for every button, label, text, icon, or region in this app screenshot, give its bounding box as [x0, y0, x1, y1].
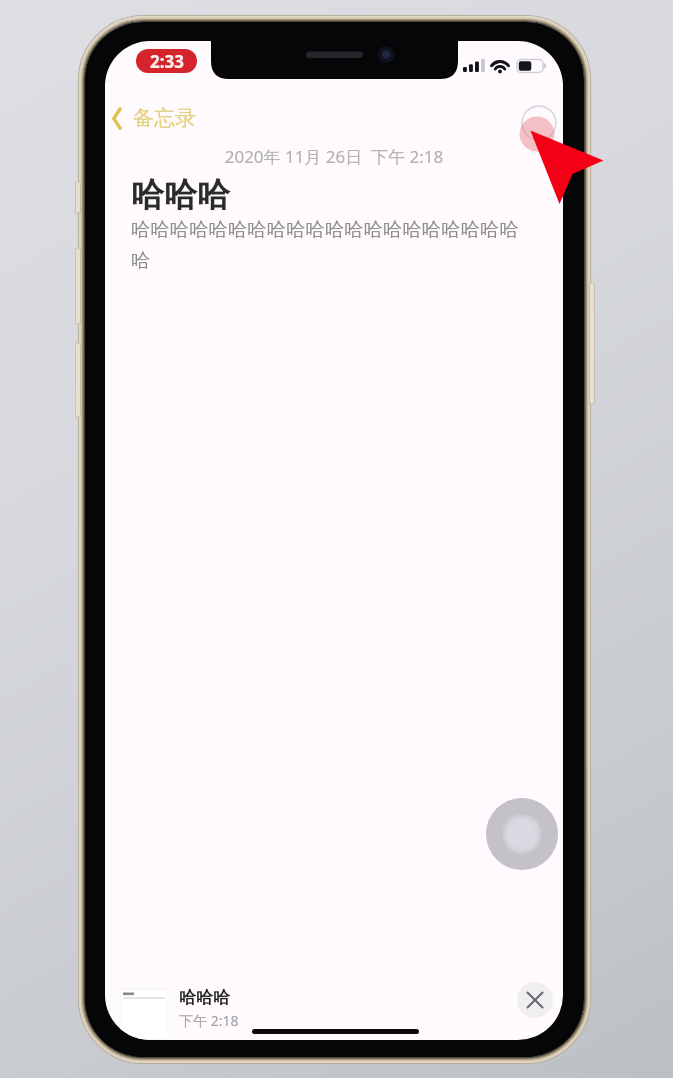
staticText: 下午 2:18 — [179, 1011, 239, 1030]
staticText: 哈哈哈哈哈哈哈哈哈哈哈哈哈哈哈哈哈哈哈哈哈 — [131, 217, 525, 273]
staticText: 哈哈哈 — [179, 987, 230, 1008]
button[interactable]: 备忘录 — [108, 101, 204, 135]
staticText: 2:33 — [150, 50, 184, 73]
staticText: 哈哈哈 — [131, 174, 230, 216]
button[interactable]: Recording — [136, 49, 197, 73]
button[interactable]: More — [521, 105, 557, 141]
staticText: 2020年 11月 26日 下午 2:18 — [105, 145, 563, 168]
button[interactable]: 哈哈哈 — [179, 987, 239, 1030]
button[interactable]: AssistiveTouch — [486, 798, 558, 870]
staticText: 备忘录 — [133, 105, 196, 131]
button[interactable]: Close — [517, 982, 553, 1018]
button[interactable]: Note preview — [120, 989, 168, 1039]
